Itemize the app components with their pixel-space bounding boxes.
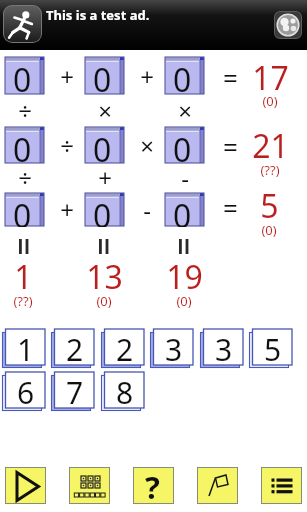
button[interactable]: 0 — [85, 193, 124, 226]
button[interactable] — [261, 467, 302, 504]
staticText: 0 — [93, 194, 112, 227]
button[interactable] — [5, 467, 46, 504]
staticText: 0 — [93, 58, 112, 95]
staticText: + — [140, 60, 154, 93]
staticText: × — [98, 94, 112, 127]
staticText: 0 — [13, 58, 32, 95]
button[interactable]: 6 — [2, 372, 45, 412]
staticText: (??) — [260, 161, 280, 179]
button[interactable] — [274, 11, 302, 39]
button[interactable]: 2 — [101, 329, 144, 369]
staticText: (0) — [96, 292, 112, 310]
staticText: This is a test ad. — [46, 6, 150, 24]
button[interactable] — [197, 467, 238, 504]
staticText: 5 — [264, 329, 282, 365]
button[interactable]: 0 — [165, 57, 204, 94]
button[interactable]: 0 — [165, 193, 204, 226]
staticText: (??) — [13, 292, 33, 310]
staticText: 7 — [66, 372, 84, 408]
button[interactable]: 1 — [2, 329, 45, 369]
staticText: 0 — [173, 58, 192, 95]
staticText: 19 — [166, 255, 203, 299]
staticText: × — [140, 129, 154, 162]
button[interactable]: This is a test ad. — [0, 0, 307, 50]
staticText: (0) — [262, 92, 278, 110]
staticText: 5 — [260, 184, 279, 228]
button[interactable] — [3, 5, 42, 43]
staticText: - — [181, 161, 189, 194]
button[interactable]: ? — [133, 467, 174, 504]
staticText: 2 — [66, 329, 84, 365]
staticText: ? — [145, 466, 160, 503]
staticText: × — [178, 94, 192, 127]
staticText: 0 — [173, 194, 192, 227]
staticText: = — [223, 60, 238, 95]
staticText: 21 — [252, 124, 289, 168]
staticText: 0 — [13, 128, 32, 164]
button[interactable]: 7 — [51, 372, 94, 412]
staticText: + — [60, 193, 74, 226]
staticText: = — [223, 129, 238, 164]
button[interactable]: 0 — [85, 57, 124, 94]
staticText: 3 — [215, 329, 233, 365]
staticText: 13 — [86, 255, 123, 299]
staticText: + — [98, 161, 112, 194]
staticText: (0) — [176, 292, 192, 310]
button[interactable]: 0 — [165, 127, 204, 163]
button[interactable]: 0 — [85, 127, 124, 163]
staticText: ÷ — [18, 161, 32, 194]
staticText: 0 — [173, 128, 192, 164]
button[interactable]: 8 — [101, 372, 144, 412]
staticText: 3 — [165, 329, 183, 365]
button[interactable] — [69, 467, 110, 504]
button[interactable]: 0 — [5, 57, 44, 94]
staticText: 0 — [13, 194, 32, 227]
staticText: = — [223, 190, 238, 225]
button[interactable]: 0 — [5, 193, 44, 226]
staticText: 2 — [116, 329, 134, 365]
staticText: 1 — [14, 255, 33, 299]
staticText: 0 — [93, 128, 112, 164]
button[interactable]: 0 — [5, 127, 44, 163]
staticText: ÷ — [18, 94, 32, 127]
staticText: ÷ — [60, 129, 74, 162]
staticText: 8 — [116, 372, 134, 408]
button[interactable]: 3 — [200, 329, 243, 369]
button[interactable]: 2 — [51, 329, 94, 369]
staticText: 6 — [17, 372, 35, 408]
button[interactable]: 3 — [150, 329, 193, 369]
staticText: + — [60, 60, 74, 93]
staticText: - — [143, 193, 151, 226]
staticText: (0) — [261, 221, 277, 239]
button[interactable]: 5 — [249, 329, 292, 369]
staticText: 1 — [17, 329, 35, 365]
staticText: 17 — [252, 56, 289, 100]
